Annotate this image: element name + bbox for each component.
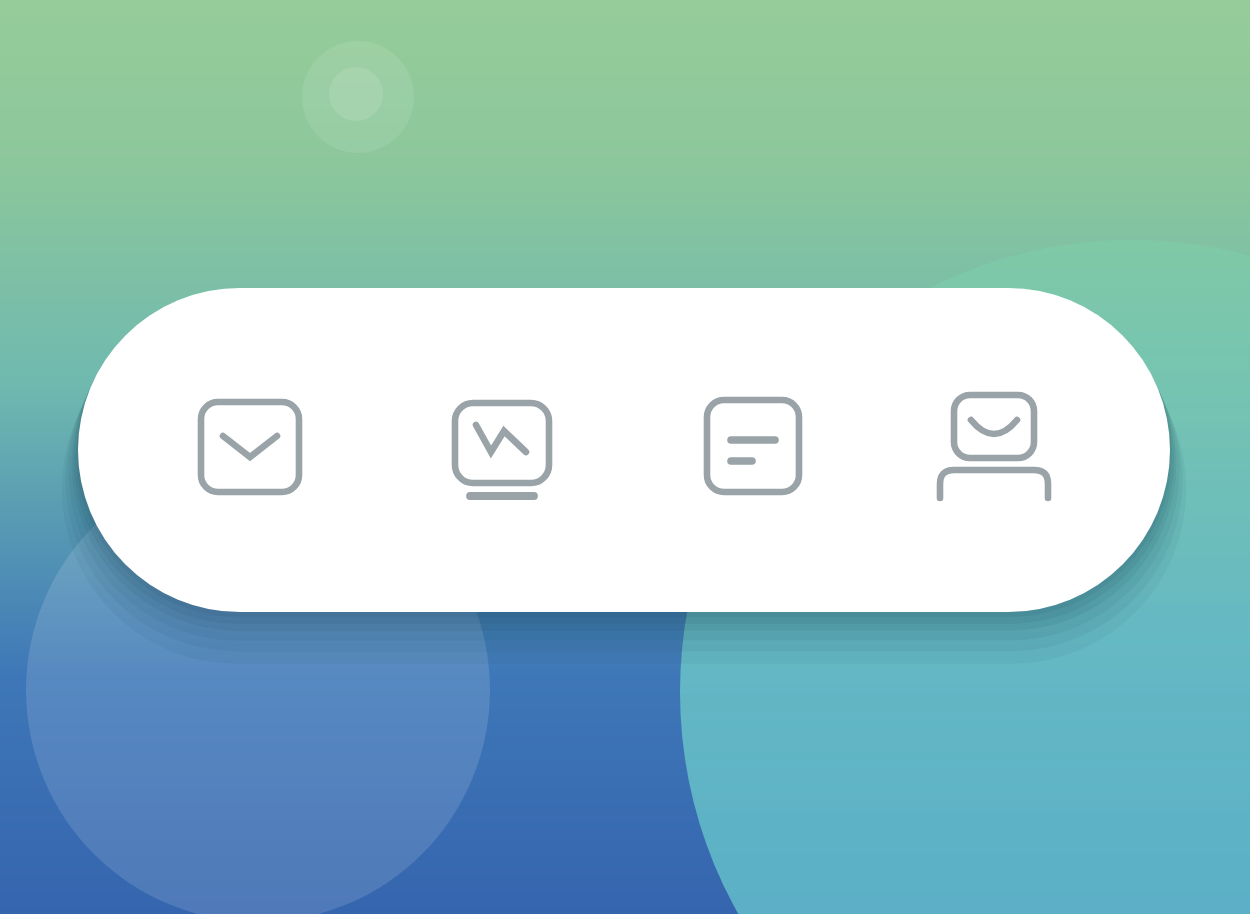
button[interactable]: Mail (184, 381, 316, 513)
button[interactable]: Notes (687, 380, 819, 512)
button[interactable]: Profile (928, 380, 1060, 512)
button[interactable]: Activity monitor (436, 377, 568, 509)
